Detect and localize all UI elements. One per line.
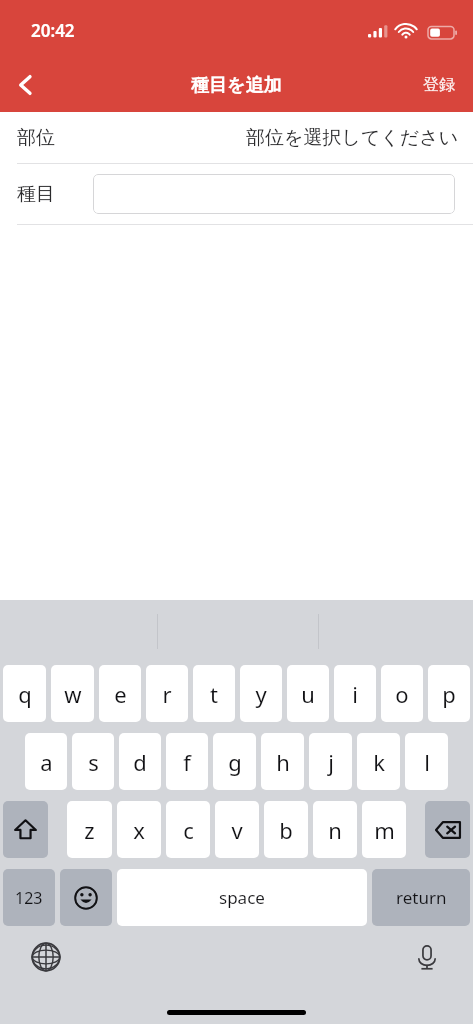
staticText: k (373, 747, 385, 777)
button[interactable]: Delete (425, 801, 470, 858)
button[interactable]: w (51, 665, 94, 722)
button[interactable]: j (309, 733, 352, 790)
staticText: w (64, 679, 82, 709)
button[interactable]: r (146, 665, 188, 722)
staticText: u (301, 679, 315, 709)
button[interactable]: x (117, 801, 161, 858)
staticText: 123 (15, 887, 43, 909)
staticText: f (183, 747, 191, 777)
button[interactable]: i (334, 665, 376, 722)
staticText: g (228, 747, 242, 777)
button[interactable]: y (240, 665, 282, 722)
staticText: a (40, 747, 53, 777)
staticText: l (424, 747, 430, 777)
staticText: q (18, 679, 32, 709)
button[interactable]: c (166, 801, 210, 858)
staticText: i (352, 679, 358, 709)
staticText: 部位を選択してください (246, 126, 459, 150)
button[interactable]: f (166, 733, 208, 790)
staticText: r (162, 679, 172, 709)
staticText: j (328, 747, 334, 777)
staticText: v (231, 815, 243, 845)
button[interactable]: u (287, 665, 329, 722)
staticText: c (183, 815, 194, 845)
staticText: n (328, 815, 342, 845)
button[interactable]: s (72, 733, 114, 790)
button[interactable]: e (99, 665, 141, 722)
button[interactable]: k (357, 733, 400, 790)
button[interactable]: h (261, 733, 304, 790)
staticText: d (133, 747, 147, 777)
staticText: s (88, 747, 99, 777)
staticText: 種目を追加 (191, 74, 282, 97)
button[interactable]: m (362, 801, 406, 858)
staticText: 登録 (423, 75, 455, 95)
button[interactable]: Shift (3, 801, 48, 858)
button[interactable]: q (3, 665, 46, 722)
button[interactable]: Change keyboard language (22, 933, 70, 981)
button[interactable]: return (372, 869, 470, 926)
staticText: y (255, 679, 267, 709)
staticText: 種目 (17, 182, 55, 206)
button[interactable]: o (381, 665, 423, 722)
staticText: b (279, 815, 293, 845)
staticText: return (396, 886, 447, 909)
button[interactable]: p (428, 665, 470, 722)
button[interactable]: z (67, 801, 112, 858)
button[interactable]: l (405, 733, 448, 790)
staticText: z (84, 815, 95, 845)
staticText: h (276, 747, 290, 777)
staticText: 20:42 (31, 19, 75, 42)
staticText: t (210, 679, 218, 709)
button[interactable]: b (264, 801, 308, 858)
button[interactable]: t (193, 665, 235, 722)
button[interactable]: 123 (3, 869, 55, 926)
staticText: 部位 (17, 126, 55, 150)
button[interactable]: Dictation (403, 933, 451, 981)
button[interactable]: a (25, 733, 67, 790)
staticText: p (442, 679, 456, 709)
button[interactable]: n (313, 801, 357, 858)
button[interactable]: Emoji (60, 869, 112, 926)
staticText: space (219, 886, 265, 909)
button[interactable] (93, 174, 455, 214)
button[interactable]: space (117, 869, 367, 926)
button[interactable]: d (119, 733, 161, 790)
button[interactable]: 部位 (0, 112, 473, 163)
staticText: x (133, 815, 145, 845)
staticText: m (374, 815, 395, 845)
staticText: e (114, 679, 127, 709)
button[interactable]: 登録 (405, 63, 473, 107)
button[interactable]: v (215, 801, 259, 858)
staticText: o (395, 679, 409, 709)
button[interactable]: g (213, 733, 256, 790)
button[interactable]: Back (0, 59, 52, 111)
